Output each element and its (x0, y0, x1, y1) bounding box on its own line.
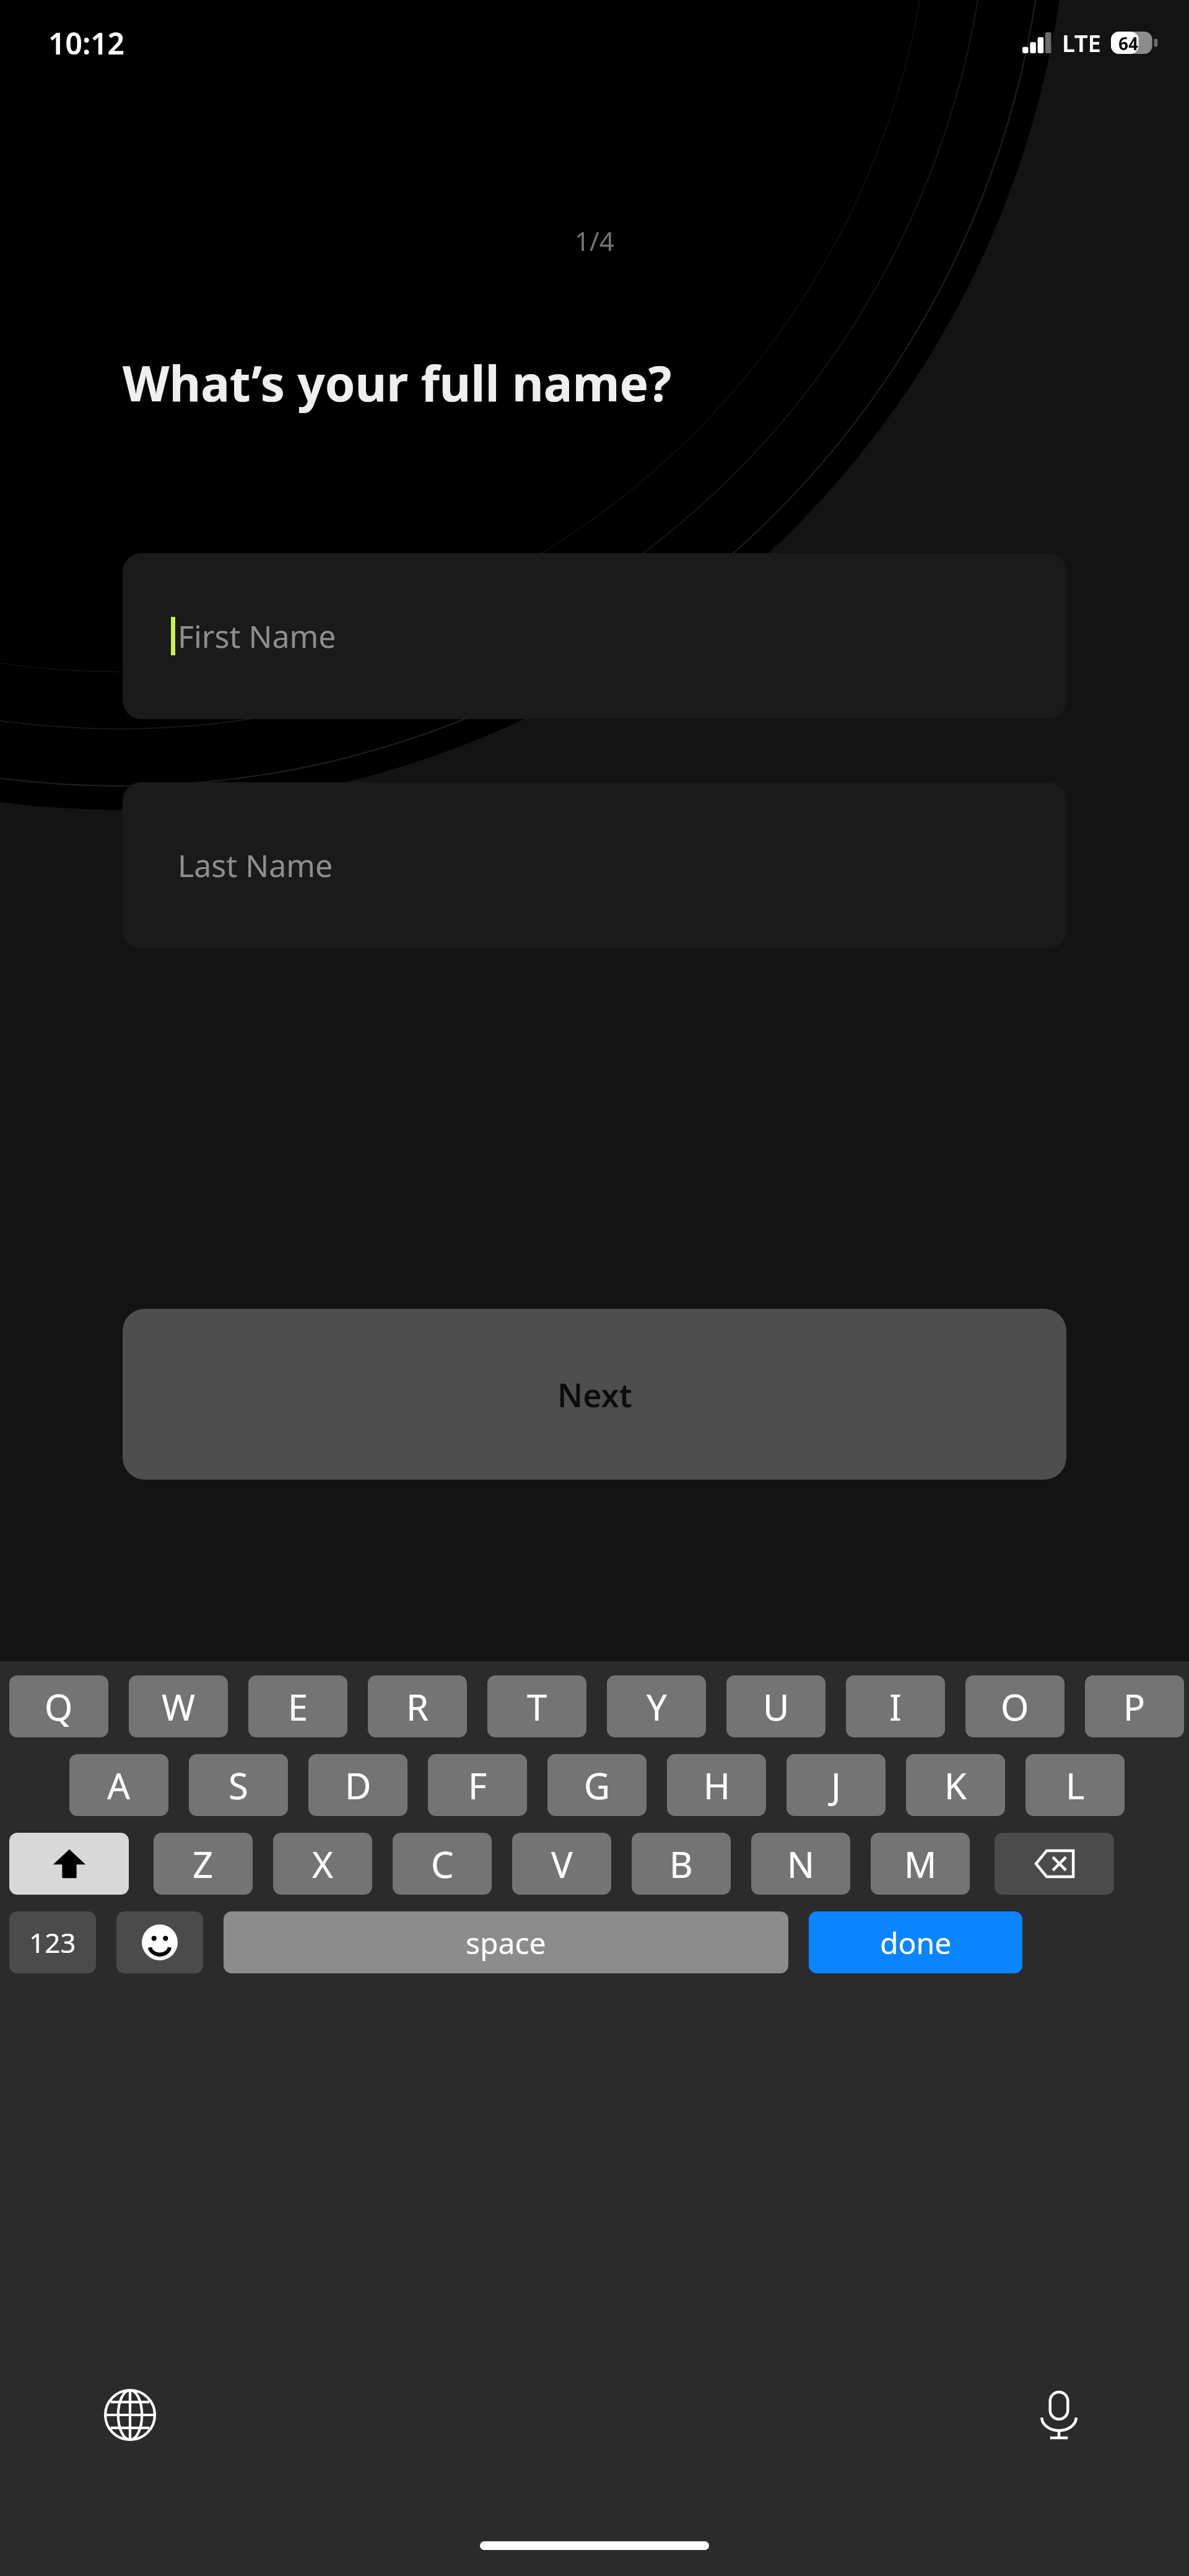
button[interactable]: G (547, 1754, 647, 1816)
staticText: 64 (1118, 32, 1139, 54)
staticText: 1/4 (575, 223, 614, 258)
button[interactable]: F (428, 1754, 527, 1816)
button[interactable]: Shift (9, 1833, 129, 1895)
staticText: Last Name (178, 844, 333, 886)
button[interactable]: W (129, 1675, 228, 1737)
button[interactable]: A (69, 1754, 168, 1816)
button[interactable]: M (871, 1833, 970, 1895)
staticText: Q (45, 1682, 73, 1731)
staticText: R (406, 1682, 429, 1731)
button[interactable]: N (751, 1833, 850, 1895)
button[interactable]: Q (9, 1675, 108, 1737)
staticText: M (904, 1840, 937, 1888)
staticText: LTE (1062, 27, 1101, 59)
staticText: Next (557, 1373, 632, 1417)
button[interactable]: K (906, 1754, 1005, 1816)
staticText: L (1066, 1761, 1085, 1810)
button[interactable]: T (487, 1675, 586, 1737)
staticText: D (345, 1761, 372, 1810)
button[interactable]: Emoji (116, 1911, 203, 1973)
button[interactable]: O (965, 1675, 1065, 1737)
button[interactable]: R (368, 1675, 467, 1737)
staticText: B (669, 1840, 693, 1888)
staticText: What’s your full name? (123, 350, 672, 416)
button[interactable]: V (512, 1833, 611, 1895)
staticText: E (288, 1682, 308, 1731)
button[interactable]: C (393, 1833, 492, 1895)
button[interactable]: First Name (123, 553, 1066, 719)
button[interactable]: L (1026, 1754, 1125, 1816)
button[interactable]: E (248, 1675, 347, 1737)
staticText: T (527, 1682, 547, 1731)
button[interactable]: Next (123, 1309, 1066, 1480)
staticText: Z (193, 1840, 214, 1888)
staticText: W (162, 1682, 195, 1731)
button[interactable]: J (786, 1754, 886, 1816)
button[interactable]: done (809, 1911, 1022, 1973)
button[interactable]: Voice input (1019, 2375, 1099, 2455)
button[interactable]: X (273, 1833, 372, 1895)
staticText: O (1001, 1682, 1029, 1731)
button[interactable]: Z (154, 1833, 253, 1895)
button[interactable]: B (632, 1833, 731, 1895)
staticText: X (312, 1840, 333, 1888)
staticText: K (944, 1761, 967, 1810)
staticText: First Name (178, 615, 336, 657)
staticText: G (584, 1761, 611, 1810)
staticText: N (787, 1840, 815, 1888)
staticText: 123 (29, 1924, 76, 1961)
button[interactable]: Delete (995, 1833, 1114, 1895)
staticText: done (880, 1923, 952, 1963)
staticText: I (889, 1682, 902, 1731)
button[interactable]: U (726, 1675, 825, 1737)
staticText: 10:12 (48, 23, 125, 63)
button[interactable]: space (224, 1911, 788, 1973)
button[interactable]: Change keyboard (90, 2375, 170, 2455)
button[interactable]: H (667, 1754, 766, 1816)
staticText: U (763, 1682, 790, 1731)
button[interactable]: 123 (9, 1911, 96, 1973)
button[interactable]: Y (607, 1675, 706, 1737)
staticText: Y (647, 1682, 667, 1731)
staticText: space (466, 1923, 546, 1963)
button[interactable]: P (1085, 1675, 1184, 1737)
button[interactable]: I (846, 1675, 945, 1737)
staticText: A (107, 1761, 131, 1810)
staticText: V (551, 1840, 573, 1888)
staticText: F (468, 1761, 487, 1810)
staticText: C (431, 1840, 454, 1888)
staticText: S (229, 1761, 248, 1810)
staticText: J (831, 1761, 841, 1810)
staticText: P (1123, 1682, 1146, 1731)
staticText: H (703, 1761, 730, 1810)
button[interactable]: D (308, 1754, 407, 1816)
button[interactable]: S (189, 1754, 288, 1816)
button[interactable]: Last Name (123, 782, 1066, 948)
